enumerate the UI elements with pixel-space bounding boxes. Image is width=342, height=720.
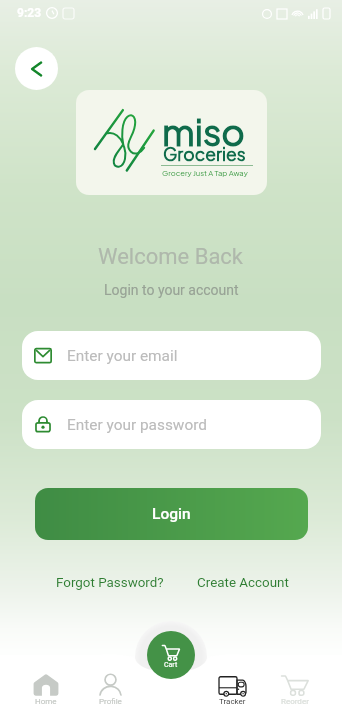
- button[interactable]: Reorder: [269, 674, 321, 706]
- staticText: Reorder: [281, 697, 309, 706]
- button[interactable]: Forgot Password?: [56, 575, 164, 591]
- button[interactable]: Profile: [84, 674, 136, 706]
- button[interactable]: Create Account: [197, 575, 289, 591]
- button[interactable]: Enter your password: [22, 400, 321, 449]
- button[interactable]: Login: [35, 488, 308, 540]
- button[interactable]: Cart: [147, 631, 195, 679]
- staticText: Home: [35, 697, 57, 706]
- button[interactable]: Enter your email: [22, 331, 321, 380]
- staticText: Enter your email: [67, 347, 178, 365]
- staticText: miso: [162, 109, 245, 154]
- button[interactable]: Home: [20, 674, 72, 706]
- staticText: 9:23: [17, 6, 42, 20]
- staticText: Cart: [164, 661, 178, 669]
- staticText: Profile: [99, 697, 122, 706]
- staticText: Enter your password: [67, 416, 207, 434]
- staticText: Login: [152, 505, 191, 523]
- staticText: Grocery Just A Tap Away: [162, 168, 248, 178]
- staticText: Welcome Back: [98, 244, 244, 270]
- button[interactable]: Tracker: [206, 674, 258, 706]
- staticText: Tracker: [219, 697, 246, 706]
- staticText: Groceries: [163, 143, 246, 165]
- button[interactable]: Back: [15, 47, 58, 90]
- staticText: Login to your account: [104, 282, 239, 298]
